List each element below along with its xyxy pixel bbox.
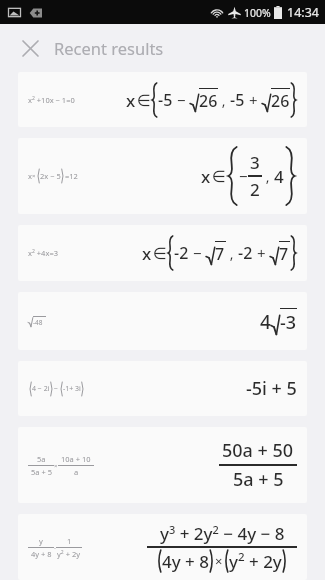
staticText: − — [239, 166, 248, 186]
staticText: × — [32, 172, 36, 180]
button[interactable]: 5a — [18, 427, 307, 503]
staticText: 7 — [215, 243, 225, 265]
button[interactable]: 4 − 2i — [18, 361, 307, 416]
staticText: -2 — [238, 242, 253, 264]
staticText: y — [39, 536, 43, 546]
staticText: 100% — [244, 6, 271, 20]
staticText: 1 — [67, 536, 72, 546]
staticText: × — [54, 462, 58, 470]
staticText: x2 +4x=3 — [28, 248, 58, 258]
staticText: x — [28, 171, 32, 181]
button[interactable]: x2 +10x − 1=0 — [18, 72, 307, 127]
staticText: x — [142, 242, 152, 265]
staticText: x — [201, 165, 211, 188]
staticText: − — [54, 384, 59, 394]
staticText: a — [74, 467, 79, 477]
staticText: -5i + 5 — [246, 376, 297, 401]
button[interactable]: x2 +4x=3 — [18, 225, 307, 281]
staticText: -5 — [230, 89, 245, 111]
staticText: ∈ — [212, 167, 226, 186]
staticText: x — [126, 89, 136, 112]
staticText: 4 — [260, 309, 271, 335]
button[interactable]: x — [18, 138, 307, 214]
staticText: 5a + 5 — [31, 467, 52, 477]
staticText: - — [54, 544, 56, 552]
button[interactable]: Close — [14, 32, 46, 64]
staticText: 4 — [274, 165, 284, 188]
staticText: -48 — [33, 318, 43, 327]
staticText: y3 + 2y2 − 4y − 8 — [160, 522, 285, 545]
staticText: 7 — [279, 243, 289, 265]
staticText: + — [245, 90, 262, 110]
staticText: ∈ — [153, 244, 167, 263]
button[interactable]: -48 — [18, 292, 307, 350]
staticText: x2 +10x − 1=0 — [28, 95, 75, 105]
staticText: y2 + 2y — [229, 549, 282, 573]
staticText: -1+ 3i — [63, 384, 81, 394]
staticText: =12 — [65, 171, 78, 181]
staticText: + — [253, 243, 270, 263]
staticText: 3 — [250, 151, 260, 174]
staticText: × — [215, 552, 223, 570]
staticText: 4 − 2i — [32, 384, 50, 394]
staticText: , — [262, 167, 274, 186]
staticText: 26 — [271, 90, 290, 112]
staticText: 26 — [199, 90, 218, 112]
staticText: 5a + 5 — [233, 467, 284, 492]
staticText: -5 — [158, 89, 173, 111]
staticText: 4y + 8 — [162, 550, 209, 573]
staticText: ∈ — [137, 91, 151, 110]
staticText: 50a + 50 — [222, 438, 294, 463]
staticText: 2 — [250, 178, 260, 201]
staticText: , — [226, 244, 238, 263]
staticText: − — [189, 243, 206, 263]
staticText: -3 — [280, 310, 297, 335]
staticText: , — [218, 91, 230, 110]
staticText: 10a + 10 — [61, 454, 91, 464]
staticText: 14:34 — [287, 4, 319, 21]
staticText: y2 + 2y — [57, 549, 81, 559]
staticText: Recent results — [54, 37, 164, 59]
staticText: − — [173, 90, 190, 110]
staticText: 2x − 5 — [40, 171, 61, 181]
button[interactable]: y — [18, 514, 307, 580]
staticText: 4y + 8 — [31, 549, 52, 559]
staticText: -2 — [174, 242, 189, 264]
staticText: 5a — [37, 454, 46, 464]
